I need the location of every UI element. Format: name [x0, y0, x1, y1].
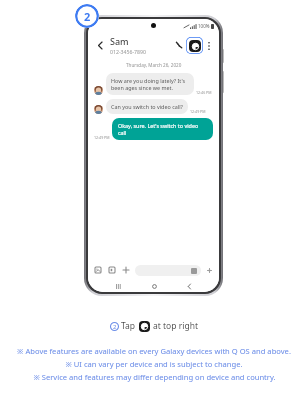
- staticText: at top right: [153, 320, 198, 332]
- staticText: Sam: [110, 35, 129, 47]
- staticText: ※ Service and features may differ depend…: [33, 372, 276, 382]
- button[interactable]: Send: [204, 265, 214, 275]
- button[interactable]: Recents: [112, 280, 124, 292]
- button[interactable]: Add attachment: [121, 265, 131, 275]
- button[interactable]: Back: [93, 38, 107, 52]
- staticText: Okay, sure. Let's switch to video call: [118, 122, 207, 136]
- button[interactable]: Can you switch to video call?: [106, 99, 188, 114]
- staticText: 12:49 PM: [190, 109, 206, 114]
- button[interactable]: [135, 265, 201, 276]
- button[interactable]: Back: [183, 280, 195, 292]
- staticText: 12:46 PM: [196, 90, 212, 95]
- staticText: 012-3456-7890: [110, 48, 146, 55]
- staticText: 2: [84, 9, 91, 24]
- button[interactable]: Camera: [107, 265, 117, 275]
- staticText: 2: [113, 323, 117, 331]
- button[interactable]: More options: [203, 40, 214, 51]
- staticText: Thursday, March 26, 2020: [126, 62, 182, 68]
- button[interactable]: Home: [148, 280, 160, 292]
- staticText: 100%: [198, 23, 210, 29]
- button[interactable]: Okay, sure. Let's switch to video call: [112, 118, 213, 140]
- button[interactable]: Voice call: [172, 38, 186, 52]
- staticText: Tap: [121, 320, 136, 332]
- staticText: ※ UI can vary per device and is subject …: [65, 359, 243, 369]
- button[interactable]: Sam: [110, 35, 172, 55]
- staticText: ※ Above features are available on every …: [17, 346, 291, 356]
- staticText: How are you doing lately? It's been ages…: [111, 77, 189, 91]
- button[interactable]: Video call: [186, 37, 203, 54]
- button[interactable]: How are you doing lately? It's been ages…: [106, 73, 194, 95]
- button[interactable]: Gallery: [93, 265, 103, 275]
- staticText: 12:49 PM: [94, 135, 110, 140]
- staticText: Can you switch to video call?: [111, 103, 183, 110]
